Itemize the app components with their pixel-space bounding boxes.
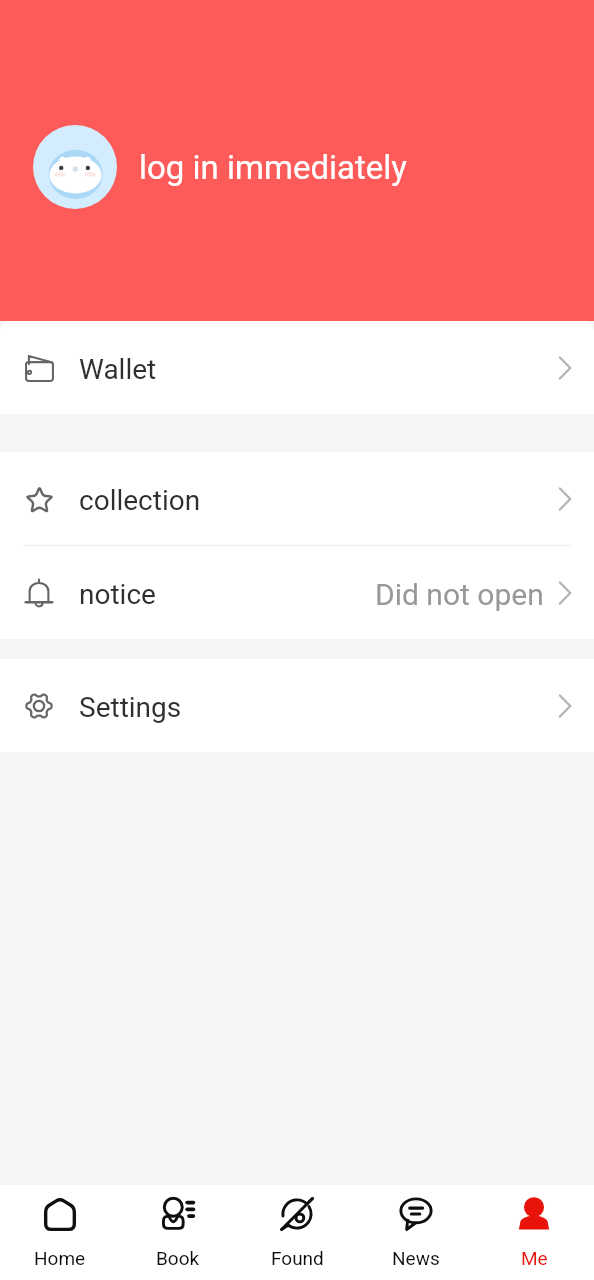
staticText: Wallet: [79, 353, 157, 386]
staticText: Book: [156, 1247, 200, 1269]
staticText: Settings: [79, 691, 182, 724]
staticText: Found: [271, 1247, 324, 1269]
staticText: News: [392, 1247, 440, 1269]
button[interactable]: Found: [238, 1185, 356, 1280]
button[interactable]: News: [357, 1185, 475, 1280]
staticText: log in immediately: [139, 148, 407, 187]
button[interactable]: Me: [475, 1185, 593, 1280]
other: Avatar: [33, 125, 117, 209]
button[interactable]: Wallet: [0, 321, 594, 414]
button[interactable]: Book: [119, 1185, 237, 1280]
staticText: Did not open: [375, 577, 544, 612]
button[interactable]: Avatar: [33, 125, 407, 209]
staticText: collection: [79, 484, 201, 517]
button[interactable]: collection: [0, 452, 594, 545]
staticText: notice: [79, 578, 156, 611]
button[interactable]: notice: [0, 546, 594, 639]
button[interactable]: Home: [1, 1185, 119, 1280]
staticText: Me: [521, 1247, 548, 1269]
staticText: Home: [34, 1247, 86, 1269]
button[interactable]: Settings: [0, 659, 594, 752]
